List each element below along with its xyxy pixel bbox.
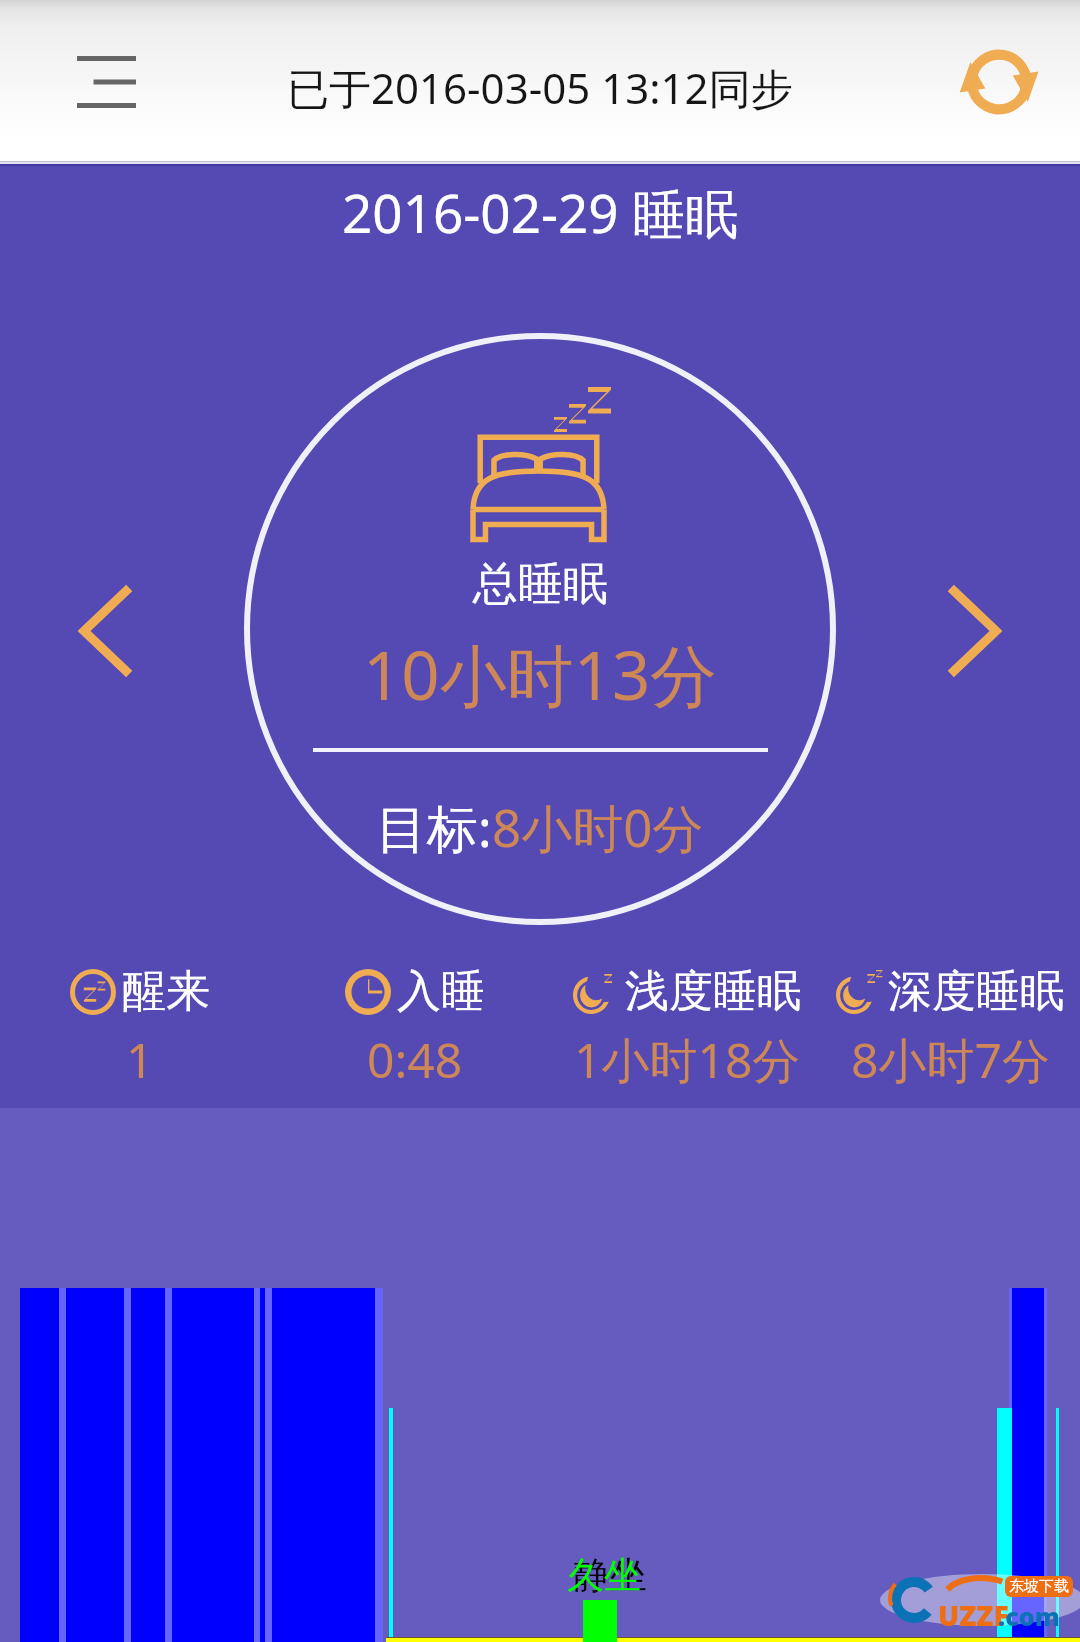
- staticText: 静坐: [573, 1552, 647, 1599]
- staticText: 醒来: [122, 964, 210, 1019]
- staticText: .com: [998, 1599, 1060, 1633]
- staticText: 8小时0分: [492, 792, 704, 862]
- button[interactable]: Next day: [915, 571, 1035, 691]
- staticText: 入睡: [397, 964, 485, 1019]
- button[interactable]: Sync: [936, 22, 1066, 142]
- staticText: 0:48: [367, 1027, 463, 1092]
- button[interactable]: Previous day: [45, 571, 165, 691]
- staticText: 目标:: [376, 792, 492, 862]
- button[interactable]: Menu: [46, 22, 166, 142]
- staticText: 已于2016-03-05 13:12同步: [287, 59, 793, 116]
- staticText: 总睡眠: [473, 556, 608, 613]
- staticText: 2016-02-29 睡眠: [342, 176, 739, 248]
- staticText: 东坡下载: [1009, 1577, 1069, 1596]
- staticText: UZZF: [938, 1596, 1009, 1634]
- staticText: 1小时18分: [574, 1027, 801, 1093]
- staticText: 10小时13分: [363, 628, 718, 720]
- staticText: 深度睡眠: [888, 964, 1064, 1019]
- staticText: 8小时7分: [851, 1027, 1050, 1093]
- staticText: 浅度睡眠: [625, 964, 801, 1019]
- staticText: 1: [126, 1027, 154, 1092]
- staticText: 久坐: [567, 1552, 641, 1599]
